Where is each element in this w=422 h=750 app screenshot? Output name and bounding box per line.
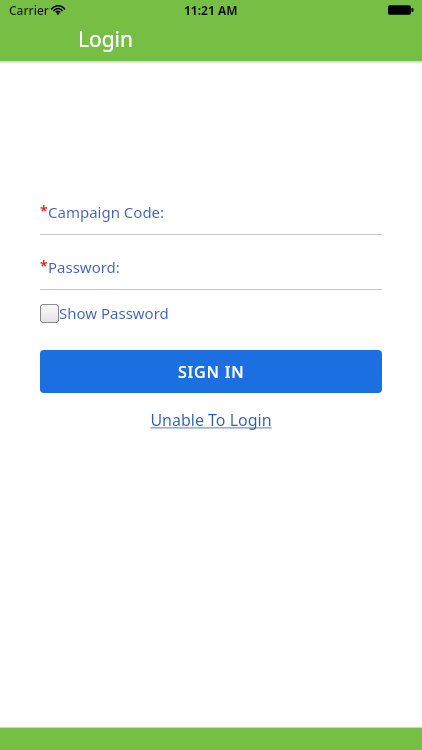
staticText: Login — [78, 25, 134, 54]
staticText: Show Password — [59, 303, 169, 323]
staticText: Unable To Login — [150, 409, 272, 431]
button[interactable]: SIGN IN — [40, 350, 382, 393]
button[interactable]: Show Password — [40, 301, 169, 325]
staticText: * — [40, 256, 48, 275]
staticText: Password: — [48, 257, 120, 277]
button[interactable]: Unable To Login — [146, 407, 276, 433]
staticText: Campaign Code: — [48, 202, 165, 222]
staticText: Carrier — [9, 2, 49, 18]
staticText: 11:21 AM — [184, 2, 238, 18]
staticText: SIGN IN — [178, 361, 245, 383]
staticText: * — [40, 201, 48, 220]
